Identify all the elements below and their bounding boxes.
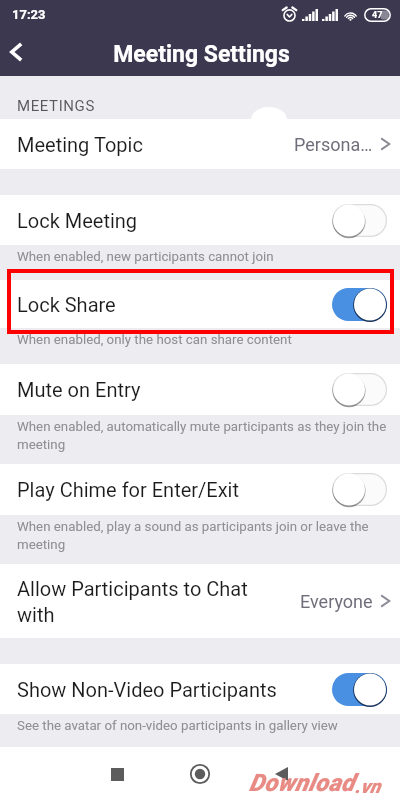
button[interactable]: Back: [0, 28, 44, 76]
staticText: When enabled, only the host can share co…: [17, 332, 292, 348]
staticText: Meeting Topic: [17, 133, 294, 156]
staticText: Lock Meeting: [17, 209, 332, 232]
staticText: Download: [249, 769, 355, 797]
staticText: Allow Participants to Chat with: [17, 577, 300, 626]
staticText: .vn: [355, 775, 381, 797]
staticText: Show Non-Video Participants: [17, 678, 332, 701]
staticText: Everyone: [300, 591, 373, 612]
button[interactable]: Recent apps: [93, 750, 141, 798]
staticText: Meeting Settings: [113, 41, 290, 68]
button[interactable]: Back: [257, 750, 305, 798]
staticText: 47: [372, 10, 383, 21]
staticText: Lock Share: [17, 293, 332, 316]
staticText: See the avatar of non-video participants…: [17, 718, 338, 734]
staticText: MEETINGS: [17, 97, 95, 115]
staticText: When enabled, play a sound as participan…: [17, 519, 389, 552]
button[interactable]: Allow Participants to Chat with: [0, 564, 400, 638]
staticText: Mute on Entry: [17, 378, 332, 401]
staticText: Play Chime for Enter/Exit: [17, 478, 332, 501]
button[interactable]: Show Non-Video Participants: [0, 664, 400, 714]
staticText: Persona…: [294, 134, 373, 155]
staticText: 17:23: [12, 7, 46, 22]
staticText: When enabled, new participants cannot jo…: [17, 249, 274, 265]
button[interactable]: Mute on Entry: [0, 364, 400, 415]
button[interactable]: Play Chime for Enter/Exit: [0, 464, 400, 515]
button[interactable]: Lock Meeting: [0, 195, 400, 245]
staticText: When enabled, automatically mute partici…: [17, 419, 389, 452]
button[interactable]: Meeting Topic: [0, 119, 400, 169]
button[interactable]: Lock Share: [0, 280, 400, 328]
button[interactable]: Home: [176, 750, 224, 798]
